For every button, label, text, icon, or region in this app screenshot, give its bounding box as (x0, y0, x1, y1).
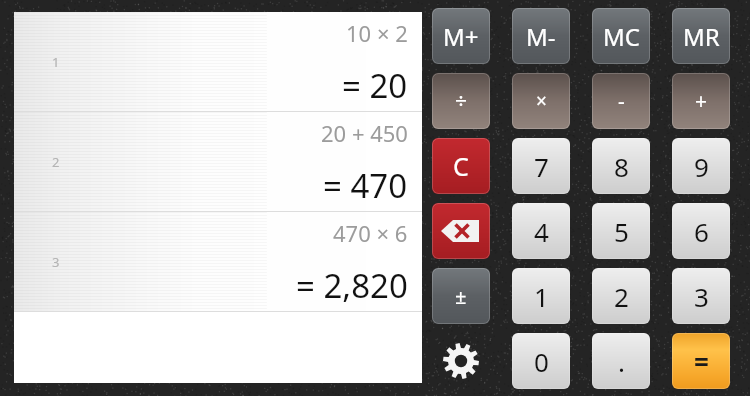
staticText: 10 × 2 (346, 18, 408, 48)
staticText: 3 (694, 279, 709, 314)
staticText: + (695, 87, 708, 116)
staticText: = 20 (342, 63, 408, 108)
button[interactable]: + (672, 73, 730, 129)
button[interactable]: 2 (14, 112, 422, 212)
staticText: = 470 (323, 163, 408, 208)
staticText: 1 (534, 279, 549, 314)
button[interactable]: 7 (512, 138, 570, 194)
staticText: 6 (694, 214, 709, 249)
staticText: MC (603, 20, 640, 53)
staticText: MR (683, 20, 720, 53)
staticText: × (536, 88, 547, 114)
staticText: 2 (614, 279, 629, 314)
button[interactable]: - (592, 73, 650, 129)
staticText: 1 (52, 53, 60, 71)
staticText: M- (526, 20, 556, 53)
staticText: 5 (614, 214, 629, 249)
staticText: 3 (52, 253, 60, 271)
staticText: 9 (694, 149, 709, 184)
button[interactable]: 9 (672, 138, 730, 194)
button[interactable]: Backspace (432, 203, 490, 259)
button[interactable]: × (512, 73, 570, 129)
staticText: 4 (534, 214, 549, 249)
button[interactable]: 1 (512, 268, 570, 324)
button[interactable]: M+ (432, 8, 490, 64)
button[interactable]: MC (592, 8, 650, 64)
staticText: 0 (534, 344, 549, 379)
staticText: ± (455, 283, 467, 310)
button[interactable]: 2 (592, 268, 650, 324)
staticText: 8 (614, 149, 629, 184)
button[interactable]: 3 (672, 268, 730, 324)
button[interactable]: Settings (432, 333, 490, 389)
button[interactable]: M- (512, 8, 570, 64)
button[interactable]: 4 (512, 203, 570, 259)
staticText: = 2,820 (296, 263, 408, 308)
button[interactable]: 1 (14, 12, 422, 112)
staticText: 20 + 450 (321, 118, 408, 148)
staticText: 470 × 6 (333, 218, 408, 248)
staticText: M+ (443, 20, 479, 53)
button[interactable]: 3 (14, 212, 422, 312)
button[interactable]: 6 (672, 203, 730, 259)
staticText: 7 (534, 149, 549, 184)
button[interactable]: ± (432, 268, 490, 324)
button[interactable]: C (432, 138, 490, 194)
staticText: - (618, 87, 625, 116)
button[interactable]: ÷ (432, 73, 490, 129)
button[interactable]: 8 (592, 138, 650, 194)
staticText: = (694, 344, 709, 379)
button[interactable]: . (592, 333, 650, 389)
button[interactable]: 0 (512, 333, 570, 389)
staticText: ÷ (455, 87, 468, 116)
button[interactable]: 5 (592, 203, 650, 259)
staticText: 2 (52, 153, 60, 171)
button[interactable]: = (672, 333, 730, 389)
staticText: . (618, 344, 625, 379)
button[interactable]: MR (672, 8, 730, 64)
staticText: C (453, 149, 469, 183)
